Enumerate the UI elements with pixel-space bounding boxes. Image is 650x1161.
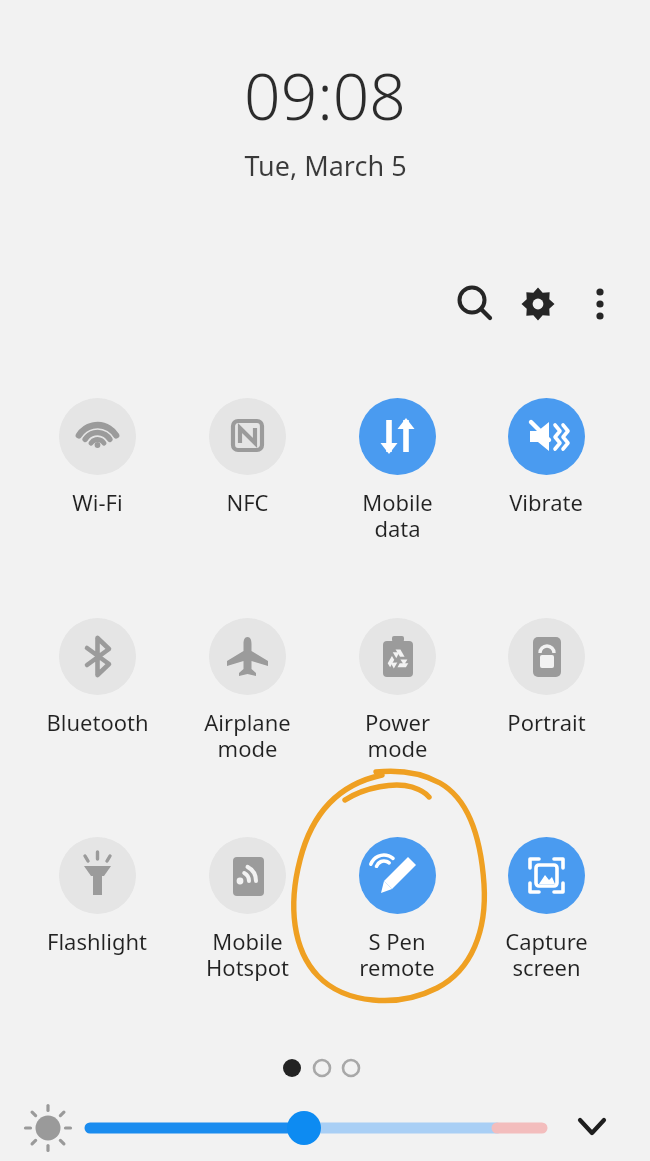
button[interactable]: Capture screen: [474, 837, 618, 983]
staticText: Capture screen: [505, 926, 588, 983]
button[interactable]: Mobile data: [325, 398, 469, 544]
button[interactable]: Mobile Hotspot: [175, 837, 319, 983]
button[interactable]: Portrait: [474, 618, 618, 737]
staticText: Tue, March 5: [244, 147, 407, 184]
button[interactable]: Vibrate: [474, 398, 618, 517]
button[interactable]: Expand: [566, 1100, 618, 1152]
staticText: Portrait: [507, 707, 586, 737]
staticText: Bluetooth: [46, 707, 149, 737]
staticText: 09:08: [244, 52, 406, 139]
button[interactable]: Flashlight: [25, 837, 169, 956]
staticText: Wi-Fi: [72, 487, 123, 517]
button[interactable]: Search: [449, 278, 501, 330]
staticText: Power mode: [365, 707, 430, 764]
button[interactable]: Bluetooth: [25, 618, 169, 737]
staticText: Flashlight: [47, 926, 147, 956]
button[interactable]: Settings: [512, 278, 564, 330]
button[interactable]: Wi-Fi: [25, 398, 169, 517]
button[interactable]: Brightness slider: [88, 1100, 544, 1156]
button[interactable]: Airplane mode: [175, 618, 319, 764]
staticText: Airplane mode: [204, 707, 291, 764]
staticText: S Pen remote: [359, 926, 435, 983]
button[interactable]: Brightness: [20, 1100, 76, 1156]
button[interactable]: NFC: [175, 398, 319, 517]
button[interactable]: More options: [574, 278, 626, 330]
staticText: Vibrate: [509, 487, 583, 517]
button[interactable]: S Pen remote: [325, 837, 469, 983]
button[interactable]: Power mode: [325, 618, 469, 764]
staticText: Mobile data: [362, 487, 433, 544]
staticText: NFC: [226, 487, 269, 517]
staticText: Mobile Hotspot: [206, 926, 289, 983]
